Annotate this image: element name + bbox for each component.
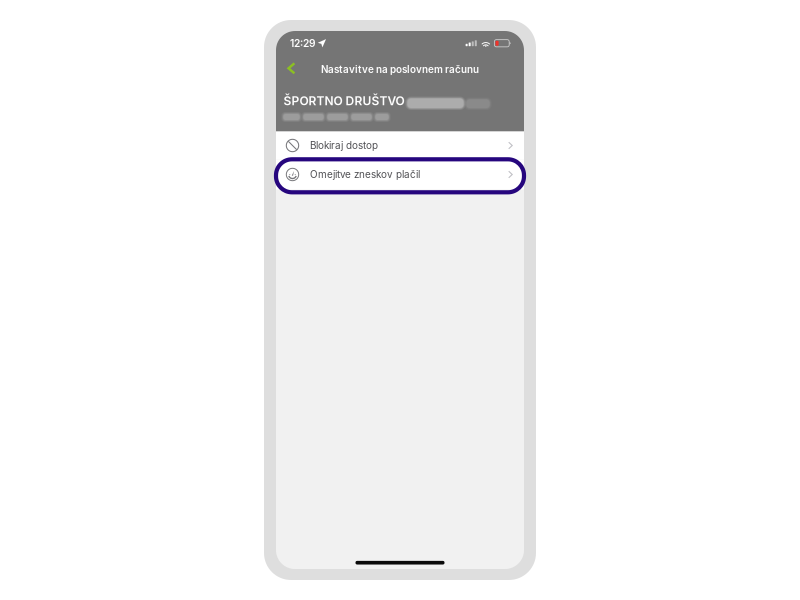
staticText: ŠPORTNO DRUŠTVO bbox=[283, 93, 404, 108]
button[interactable]: Blokiraj dostop bbox=[276, 131, 524, 159]
staticText: Nastavitve na poslovnem računu bbox=[321, 63, 479, 75]
staticText: 12:29 bbox=[290, 37, 315, 49]
button[interactable]: Omejitve zneskov plačil bbox=[276, 159, 524, 189]
staticText: Omejitve zneskov plačil bbox=[310, 168, 420, 180]
button[interactable]: Back bbox=[276, 53, 307, 79]
staticText: Blokiraj dostop bbox=[310, 139, 378, 151]
